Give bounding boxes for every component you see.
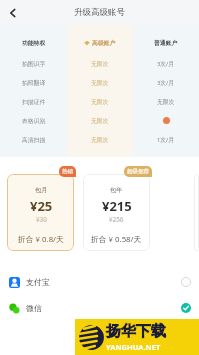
staticText: 包月 (35, 186, 48, 194)
staticText: 超级推荐 (127, 168, 149, 175)
staticText: 热销 (62, 168, 73, 175)
staticText: ¥256 (109, 215, 124, 224)
button[interactable]: Back (4, 4, 22, 22)
staticText: 无限次 (91, 60, 109, 67)
staticText: 无限次 (91, 98, 109, 105)
staticText: 无限次 (91, 79, 109, 86)
staticText: 折合 ¥ 0.58/天 (91, 234, 142, 245)
button[interactable]: 支付宝 (0, 269, 199, 295)
button[interactable]: 包年 (83, 174, 150, 251)
staticText: YANGHUA.NET (106, 342, 161, 352)
staticText: 包年 (110, 186, 123, 194)
staticText: 高清扫描 (22, 136, 46, 143)
staticText: 高级账户 (92, 39, 116, 46)
staticText: 无限次 (157, 98, 175, 105)
staticText: 3次/月 (157, 79, 175, 87)
staticText: 拍图识字 (22, 60, 46, 67)
staticText: ¥30 (36, 215, 47, 224)
staticText: ¥215 (102, 197, 132, 215)
staticText: 普通账户 (154, 39, 178, 46)
staticText: 折合 ¥ 0.8/天 (18, 234, 64, 245)
staticText: 表格识别 (22, 117, 46, 124)
staticText: 扫描证件 (22, 98, 46, 105)
staticText: 无限次 (91, 117, 109, 124)
button[interactable]: 包月 (7, 174, 74, 251)
staticText: 拍照翻译 (22, 79, 46, 86)
staticText: 功能特权 (22, 39, 46, 46)
staticText: 升级高级账号 (74, 7, 125, 18)
staticText: 1次/月 (157, 136, 175, 144)
staticText: 扬华下载 (106, 322, 166, 341)
staticText: 支付宝 (26, 277, 50, 287)
staticText: 无限次 (91, 136, 109, 143)
button[interactable]: 微信 (0, 295, 199, 321)
staticText: 微信 (26, 303, 42, 313)
staticText: ¥25 (30, 197, 53, 215)
staticText: 3次/月 (157, 60, 175, 68)
